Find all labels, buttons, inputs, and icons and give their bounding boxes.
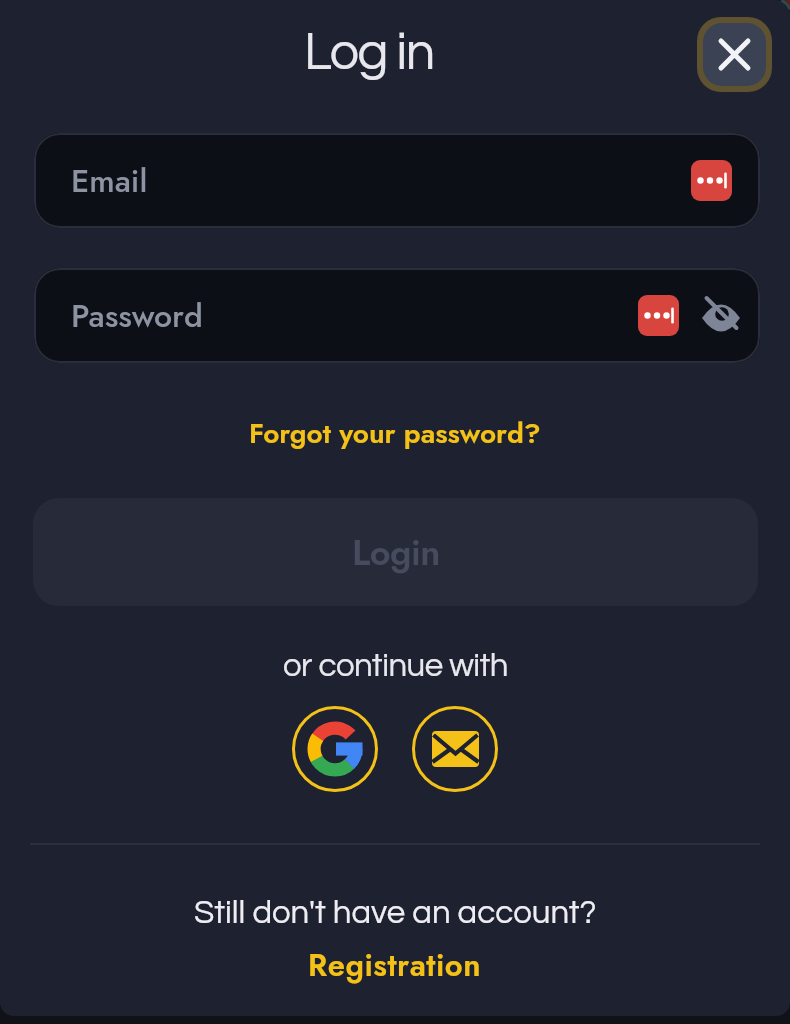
button[interactable]: [412, 706, 498, 792]
button[interactable]: Forgot your password?: [249, 413, 541, 453]
button[interactable]: [292, 706, 378, 792]
staticText: Login: [352, 526, 440, 578]
button[interactable]: Email: [34, 133, 760, 228]
staticText: Forgot your password?: [249, 413, 541, 453]
staticText: Still don't have an account?: [194, 896, 597, 930]
staticText: Email: [71, 158, 148, 204]
staticText: or continue with: [283, 649, 508, 683]
button[interactable]: [697, 17, 772, 92]
button[interactable]: Password: [34, 268, 760, 363]
staticText: Password: [71, 293, 203, 339]
button[interactable]: Registration: [308, 943, 482, 987]
staticText: Registration: [308, 943, 482, 987]
staticText: Log in: [304, 26, 434, 80]
button[interactable]: Login: [33, 498, 758, 606]
